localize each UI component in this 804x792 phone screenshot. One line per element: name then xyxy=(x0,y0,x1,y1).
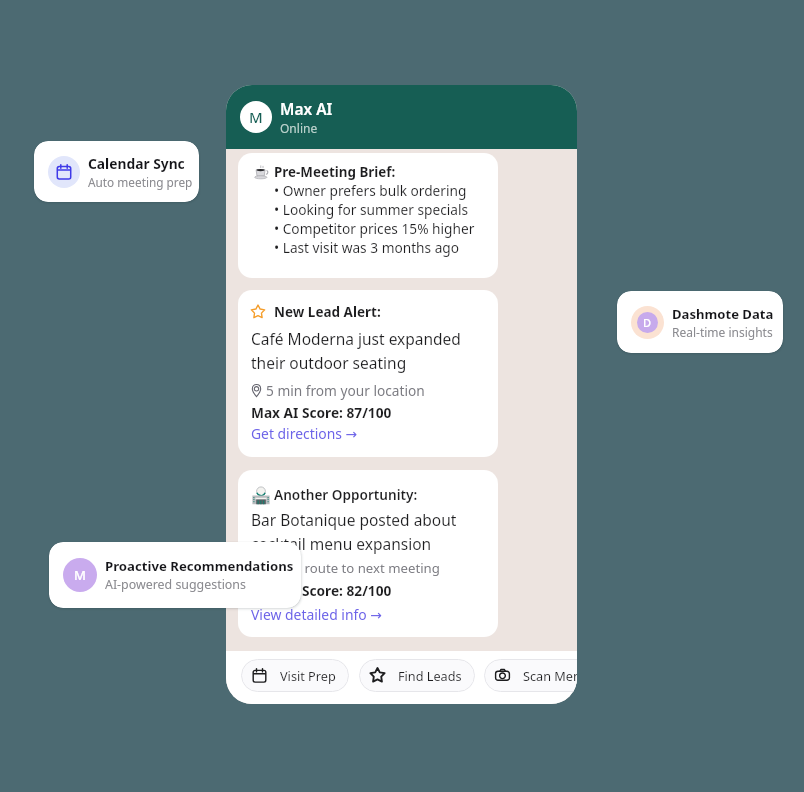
staticText: D xyxy=(643,315,652,330)
staticText: • Looking for summer specials xyxy=(274,200,469,219)
staticText: Café Moderna just expanded their outdoor… xyxy=(251,328,490,373)
button[interactable]: M xyxy=(226,85,577,149)
staticText: View detailed info → xyxy=(251,605,382,624)
other: Calendar xyxy=(48,156,80,188)
staticText: Auto meeting prep xyxy=(88,174,193,190)
staticText: New Lead Alert: xyxy=(274,303,381,321)
button[interactable]: Visit Prep xyxy=(241,659,349,692)
staticText: Online xyxy=(280,120,318,136)
staticText: Bar Botanique posted about cocktail menu… xyxy=(251,509,490,554)
staticText: AI-powered suggestions xyxy=(105,576,246,593)
staticText: M xyxy=(74,566,86,584)
staticText: Max AI Score: 82/100 xyxy=(251,581,392,600)
button[interactable]: M xyxy=(49,542,301,608)
staticText: • Last visit was 3 months ago xyxy=(274,238,460,257)
staticText: Scan Menu xyxy=(523,667,577,684)
button[interactable]: View detailed info → xyxy=(251,605,382,624)
staticText: Calendar Sync xyxy=(88,154,185,173)
staticText: Real-time insights xyxy=(672,324,773,340)
button[interactable]: New Lead Alert: xyxy=(238,290,498,457)
button[interactable]: Scan Menu xyxy=(484,659,577,692)
button[interactable]: Get directions → xyxy=(251,424,358,443)
staticText: Dashmote Data xyxy=(672,305,774,323)
staticText: Proactive Recommendations xyxy=(105,557,294,575)
staticText: Another Opportunity: xyxy=(274,485,418,504)
staticText: On your route to next meeting xyxy=(251,559,440,577)
staticText: 5 min from your location xyxy=(266,381,425,400)
button[interactable]: Pre-Meeting Brief: xyxy=(238,153,498,278)
staticText: Max AI xyxy=(280,98,333,119)
staticText: Max AI Score: 87/100 xyxy=(251,403,392,422)
staticText: • Competitor prices 15% higher xyxy=(274,219,475,238)
button[interactable]: Another Opportunity: xyxy=(238,470,498,637)
staticText: Visit Prep xyxy=(280,667,336,684)
staticText: Pre-Meeting Brief: xyxy=(274,163,396,181)
staticText: • Owner prefers bulk ordering xyxy=(274,181,467,200)
staticText: Find Leads xyxy=(398,667,462,684)
button[interactable]: Calendar xyxy=(34,141,199,202)
staticText: Get directions → xyxy=(251,424,358,443)
button[interactable]: Find Leads xyxy=(359,659,475,692)
button[interactable]: D xyxy=(617,291,783,353)
staticText: M xyxy=(249,107,263,127)
